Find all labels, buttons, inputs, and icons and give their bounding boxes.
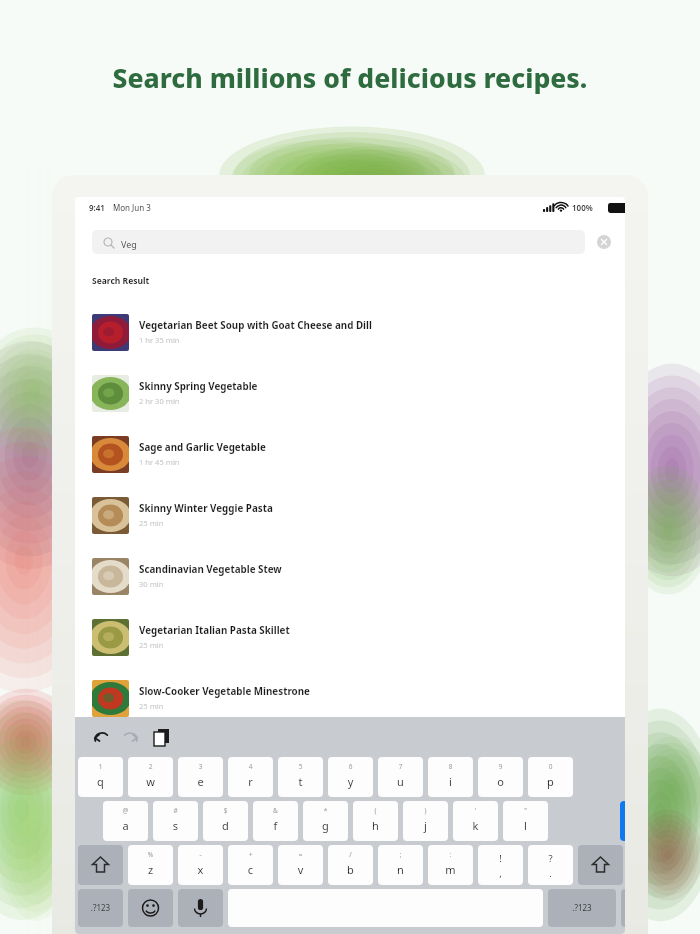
button[interactable]: Shift xyxy=(78,845,123,885)
button[interactable]: + xyxy=(228,845,273,885)
button[interactable]: ; xyxy=(378,845,423,885)
staticText: $ xyxy=(203,806,248,815)
staticText: ' xyxy=(453,806,498,815)
staticText: 1 xyxy=(78,762,123,771)
button[interactable]: Shift xyxy=(578,845,623,885)
button[interactable]: Sage and Garlic Vegetable xyxy=(92,427,602,481)
staticText: w xyxy=(128,774,173,789)
staticText: 30 min xyxy=(139,579,164,589)
staticText: 6 xyxy=(328,762,373,771)
staticText: 25 min xyxy=(139,640,164,650)
staticText: # xyxy=(153,806,198,815)
staticText: z xyxy=(128,862,173,877)
staticText: y xyxy=(328,774,373,789)
staticText: Skinny Winter Veggie Pasta xyxy=(139,502,273,515)
button[interactable]: = xyxy=(278,845,323,885)
staticText: Scandinavian Vegetable Stew xyxy=(139,563,282,576)
staticText: * xyxy=(303,806,348,815)
staticText: Veg xyxy=(121,238,181,250)
button[interactable]: @ xyxy=(103,801,148,841)
button[interactable]: Clear search xyxy=(597,235,611,249)
button[interactable]: 5 xyxy=(278,757,323,797)
button[interactable]: ' xyxy=(453,801,498,841)
staticText: v xyxy=(278,862,323,877)
button[interactable]: 7 xyxy=(378,757,423,797)
staticText: k xyxy=(453,818,498,833)
staticText: . xyxy=(528,867,573,880)
button[interactable]: Veg xyxy=(92,230,585,254)
staticText: 4 xyxy=(228,762,273,771)
button[interactable]: Hide keyboard xyxy=(621,889,625,927)
staticText: Vegetarian Beet Soup with Goat Cheese an… xyxy=(139,319,372,332)
button[interactable]: Scandinavian Vegetable Stew xyxy=(92,549,602,603)
staticText: s xyxy=(153,818,198,833)
staticText: 7 xyxy=(378,762,423,771)
staticText: q xyxy=(78,774,123,789)
button[interactable]: : xyxy=(428,845,473,885)
staticText: 9 xyxy=(478,762,523,771)
staticText: Skinny Spring Vegetable xyxy=(139,380,258,393)
staticText: 25 min xyxy=(139,701,164,711)
staticText: 8 xyxy=(428,762,473,771)
staticText: Mon Jun 3 xyxy=(113,202,193,213)
staticText: o xyxy=(478,774,523,789)
staticText: .?123 xyxy=(548,902,616,913)
button[interactable]: 4 xyxy=(228,757,273,797)
staticText: g xyxy=(303,818,348,833)
staticText: + xyxy=(228,850,273,859)
staticText: 2 xyxy=(128,762,173,771)
button[interactable]: search xyxy=(620,801,625,841)
button[interactable]: Paste xyxy=(151,726,173,748)
button[interactable]: ! xyxy=(478,845,523,885)
button[interactable]: Undo xyxy=(91,726,113,748)
button[interactable]: Voice input xyxy=(178,889,223,927)
staticText: p xyxy=(528,774,573,789)
button[interactable]: Slow-Cooker Vegetable Minestrone xyxy=(92,671,602,725)
staticText: h xyxy=(353,818,398,833)
staticText: ? xyxy=(528,852,573,865)
button[interactable]: 0 xyxy=(528,757,573,797)
staticText: a xyxy=(103,818,148,833)
button[interactable]: " xyxy=(503,801,548,841)
button[interactable]: Redo xyxy=(119,726,141,748)
button[interactable]: 3 xyxy=(178,757,223,797)
button[interactable]: 8 xyxy=(428,757,473,797)
button[interactable]: * xyxy=(303,801,348,841)
button[interactable]: .?123 xyxy=(548,889,616,927)
staticText: d xyxy=(203,818,248,833)
staticText: n xyxy=(378,862,423,877)
staticText: r xyxy=(228,774,273,789)
button[interactable]: # xyxy=(153,801,198,841)
button[interactable]: ) xyxy=(403,801,448,841)
staticText: Search millions of delicious recipes. xyxy=(0,60,700,96)
button[interactable]: 9 xyxy=(478,757,523,797)
button[interactable]: ( xyxy=(353,801,398,841)
staticText: , xyxy=(478,867,523,880)
button[interactable]: ? xyxy=(528,845,573,885)
button[interactable]: Vegetarian Beet Soup with Goat Cheese an… xyxy=(92,305,602,359)
staticText: f xyxy=(253,818,298,833)
staticText: 1 hr 35 min xyxy=(139,335,180,345)
staticText: 0 xyxy=(528,762,573,771)
button[interactable]: % xyxy=(128,845,173,885)
button[interactable]: / xyxy=(328,845,373,885)
button[interactable]: - xyxy=(178,845,223,885)
staticText: 9:41 xyxy=(89,202,129,213)
button[interactable]: & xyxy=(253,801,298,841)
button[interactable]: 6 xyxy=(328,757,373,797)
staticText: " xyxy=(503,806,548,815)
button[interactable]: Skinny Winter Veggie Pasta xyxy=(92,488,602,542)
staticText: - xyxy=(178,850,223,859)
staticText: / xyxy=(328,850,373,859)
staticText: ; xyxy=(378,850,423,859)
button[interactable]: Vegetarian Italian Pasta Skillet xyxy=(92,610,602,664)
staticText: @ xyxy=(103,806,148,815)
button[interactable]: .?123 xyxy=(78,889,123,927)
button[interactable]: 2 xyxy=(128,757,173,797)
button[interactable]: Emoji xyxy=(128,889,173,927)
button[interactable]: $ xyxy=(203,801,248,841)
button[interactable]: Skinny Spring Vegetable xyxy=(92,366,602,420)
button[interactable]: 1 xyxy=(78,757,123,797)
